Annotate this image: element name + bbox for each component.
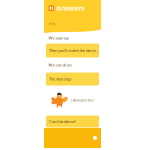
button[interactable]: Can I do demo? — [44, 115, 101, 128]
button[interactable]: Send — [93, 136, 97, 140]
staticText: Answers — [56, 4, 84, 13]
staticText: We saw our — [48, 35, 69, 41]
staticText: I am a robot tho? — [71, 99, 94, 102]
button[interactable]: We can drive — [44, 58, 101, 72]
staticText: Then you'll match the decisions — [49, 48, 99, 53]
button[interactable]: Then you'll match the decisions — [44, 43, 101, 58]
button[interactable]: The next step — [44, 72, 101, 86]
staticText: Hello — [49, 22, 57, 26]
staticText: The next step — [49, 76, 71, 82]
button[interactable]: We saw our — [44, 33, 101, 43]
staticText: Can I do demo? — [49, 119, 76, 124]
staticText: We can drive — [48, 62, 71, 68]
button[interactable]: Answers — [44, 0, 101, 13]
